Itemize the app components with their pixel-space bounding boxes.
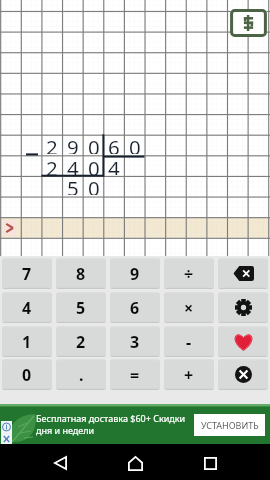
staticText: 4 (108, 154, 120, 175)
button[interactable]: 8 (56, 258, 106, 289)
button[interactable]: 9 (110, 258, 160, 289)
button[interactable]: . (56, 359, 106, 390)
staticText: 9 (130, 263, 140, 285)
staticText: 2 (76, 331, 86, 353)
button[interactable]: + (164, 359, 214, 390)
staticText: 2 (46, 154, 58, 175)
staticText: 4 (67, 154, 79, 175)
staticText: 6 (130, 297, 140, 319)
staticText: 0 (129, 133, 141, 154)
button[interactable]: Home (118, 446, 152, 480)
other: Clear (235, 366, 252, 383)
button[interactable]: = (110, 359, 160, 390)
staticText: УСТАНОВИТЬ (201, 419, 259, 431)
staticText: . (79, 364, 84, 386)
staticText: 4 (22, 297, 32, 319)
button[interactable]: 3 (110, 326, 160, 357)
button[interactable]: Delete (218, 258, 268, 289)
staticText: × (184, 297, 194, 319)
button[interactable]: Clear (218, 359, 268, 390)
button[interactable]: 7 (2, 258, 52, 289)
staticText: ÷ (184, 263, 194, 285)
staticText: 0 (88, 154, 100, 175)
staticText: 5 (67, 174, 79, 195)
staticText: 0 (88, 133, 100, 154)
button[interactable]: УСТАНОВИТЬ (194, 414, 265, 436)
button[interactable]: Recents (193, 446, 227, 480)
staticText: 7 (22, 263, 32, 285)
button[interactable]: 5 (56, 292, 106, 323)
other: Delete (233, 266, 254, 281)
staticText: + (184, 364, 194, 386)
staticText: 6 (108, 133, 120, 154)
button[interactable]: 0 (2, 359, 52, 390)
button[interactable]: Money (230, 9, 267, 37)
button[interactable]: Бесплатная доставка $60+ Скидки дня и не… (0, 404, 270, 444)
button[interactable]: - (164, 326, 214, 357)
staticText: 8 (76, 263, 86, 285)
button[interactable]: ÷ (164, 258, 214, 289)
button[interactable]: Settings (218, 292, 268, 323)
button[interactable]: 4 (2, 292, 52, 323)
staticText: = (130, 364, 140, 386)
staticText: Бесплатная доставка $60+ Скидки дня и не… (36, 412, 186, 437)
other: Favorite (233, 332, 254, 351)
staticText: - (186, 331, 192, 353)
staticText: 0 (88, 174, 100, 195)
button[interactable]: × (164, 292, 214, 323)
staticText: 5 (76, 297, 86, 319)
button[interactable]: 6 (110, 292, 160, 323)
button[interactable]: Back (43, 446, 77, 480)
staticText: 0 (22, 364, 32, 386)
button[interactable]: Input (4, 220, 15, 236)
button[interactable]: 1 (2, 326, 52, 357)
other: Settings (235, 299, 252, 316)
staticText: 3 (130, 331, 140, 353)
button[interactable]: 2 (56, 326, 106, 357)
staticText: 9 (67, 133, 79, 154)
button[interactable]: Favorite (218, 326, 268, 357)
staticText: 2 (46, 133, 58, 154)
staticText: 1 (22, 331, 32, 353)
